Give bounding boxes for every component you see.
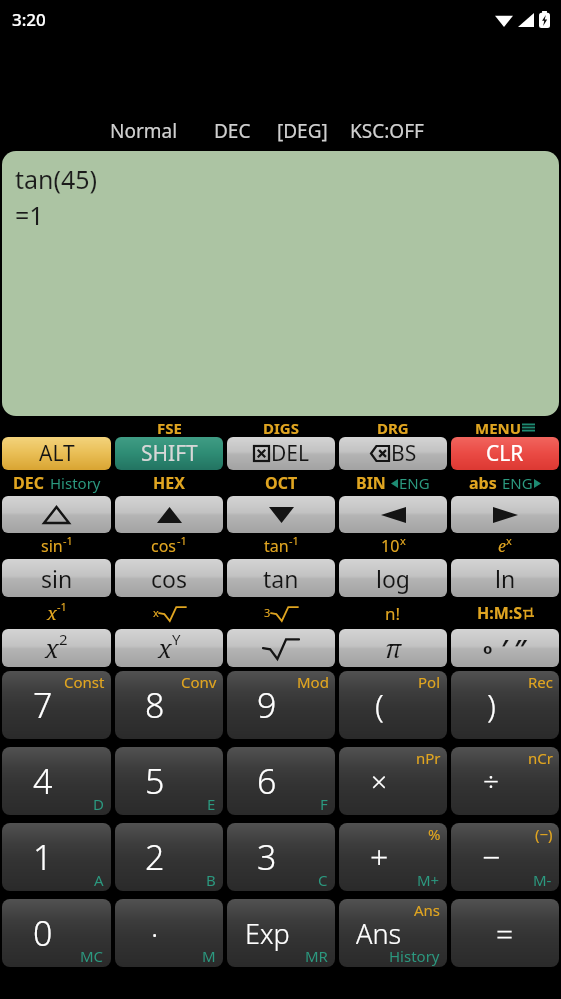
- staticText: Conv: [181, 672, 217, 692]
- button[interactable]: Backspace: [339, 437, 447, 470]
- staticText: C: [318, 870, 328, 890]
- button[interactable]: SHIFT: [115, 437, 223, 470]
- button[interactable]: +: [339, 823, 447, 891]
- staticText: MENU: [475, 418, 522, 437]
- staticText: =1: [15, 198, 44, 232]
- button[interactable]: Delete: [227, 437, 335, 470]
- staticText: tan(45): [15, 162, 98, 196]
- staticText: ·: [151, 913, 159, 954]
- button[interactable]: tan: [227, 559, 335, 597]
- staticText: x: [45, 631, 59, 665]
- button[interactable]: 9: [227, 671, 335, 739]
- staticText: CLR: [486, 439, 524, 468]
- button[interactable]: Right: [451, 496, 559, 533]
- staticText: ALT: [39, 439, 75, 468]
- button[interactable]: ·: [115, 899, 223, 967]
- button[interactable]: 5: [115, 747, 223, 815]
- staticText: DRG: [377, 418, 409, 437]
- button[interactable]: cos: [115, 559, 223, 597]
- staticText: 2: [59, 629, 68, 649]
- staticText: =: [496, 913, 514, 954]
- staticText: E: [207, 794, 216, 814]
- staticText: %: [428, 824, 441, 844]
- staticText: H:M:S: [477, 602, 523, 624]
- button[interactable]: (: [339, 671, 447, 739]
- staticText: HEX: [153, 472, 185, 494]
- button[interactable]: Left: [339, 496, 447, 533]
- staticText: −: [482, 835, 501, 879]
- button[interactable]: CLR: [451, 437, 559, 470]
- staticText: (: [375, 683, 384, 727]
- button[interactable]: 4: [2, 747, 111, 815]
- button[interactable]: ÷: [451, 747, 559, 815]
- button[interactable]: ALT: [2, 437, 111, 470]
- button[interactable]: −: [451, 823, 559, 891]
- staticText: Pol: [418, 672, 441, 692]
- staticText: Exp: [245, 915, 290, 952]
- staticText: ″: [514, 631, 528, 665]
- staticText: D: [93, 794, 104, 814]
- staticText: ÷: [483, 762, 499, 800]
- staticText: FSE: [157, 418, 182, 437]
- staticText: Rec: [528, 672, 553, 692]
- staticText: DIGS: [263, 418, 299, 437]
- staticText: 7: [33, 682, 53, 728]
- staticText: +: [370, 835, 389, 879]
- staticText: o: [483, 638, 493, 658]
- staticText: BS: [391, 439, 417, 468]
- button[interactable]: ln: [451, 559, 559, 597]
- staticText: DEC: [13, 472, 44, 494]
- button[interactable]: =: [451, 899, 559, 967]
- staticText: sin: [41, 535, 63, 557]
- button[interactable]: 0: [2, 899, 111, 967]
- button[interactable]: x: [115, 629, 223, 667]
- staticText: 0: [33, 910, 53, 956]
- button[interactable]: 2: [115, 823, 223, 891]
- staticText: OCT: [265, 472, 298, 494]
- button[interactable]: Down: [227, 496, 335, 533]
- button[interactable]: Exp: [227, 899, 335, 967]
- staticText: e: [498, 535, 506, 557]
- button[interactable]: Up: [115, 496, 223, 533]
- staticText: [DEG]: [277, 118, 328, 144]
- staticText: (−): [535, 824, 553, 844]
- button[interactable]: ×: [339, 747, 447, 815]
- button[interactable]: Ans: [339, 899, 447, 967]
- button[interactable]: ): [451, 671, 559, 739]
- button[interactable]: tan(45): [2, 151, 559, 416]
- staticText: A: [94, 870, 104, 890]
- staticText: ln: [495, 563, 516, 594]
- button[interactable]: 7: [2, 671, 111, 739]
- button[interactable]: Square root: [227, 629, 335, 667]
- staticText: M: [202, 946, 216, 966]
- button[interactable]: Degrees minutes seconds: [451, 629, 559, 667]
- staticText: abs: [469, 472, 497, 494]
- button[interactable]: π: [339, 629, 447, 667]
- staticText: KSC:OFF: [350, 118, 424, 144]
- staticText: -1: [289, 533, 299, 548]
- staticText: B: [206, 870, 216, 890]
- button[interactable]: Up outline: [2, 496, 111, 533]
- staticText: x: [158, 631, 172, 665]
- button[interactable]: 1: [2, 823, 111, 891]
- button[interactable]: log: [339, 559, 447, 597]
- button[interactable]: sin: [2, 559, 111, 597]
- staticText: 3: [257, 834, 277, 880]
- staticText: ×: [371, 762, 387, 800]
- staticText: 5: [145, 758, 165, 804]
- staticText: 1: [33, 834, 53, 880]
- staticText: nPr: [416, 748, 441, 768]
- staticText: DEL: [271, 439, 310, 468]
- staticText: tan: [263, 563, 299, 594]
- staticText: History: [389, 946, 440, 966]
- staticText: 6: [257, 758, 277, 804]
- button[interactable]: x: [2, 629, 111, 667]
- staticText: x: [153, 605, 159, 620]
- staticText: cos: [151, 563, 187, 594]
- button[interactable]: 8: [115, 671, 223, 739]
- button[interactable]: 3: [227, 823, 335, 891]
- button[interactable]: 6: [227, 747, 335, 815]
- staticText: -1: [63, 533, 73, 548]
- staticText: x: [47, 601, 57, 626]
- staticText: nCr: [528, 748, 553, 768]
